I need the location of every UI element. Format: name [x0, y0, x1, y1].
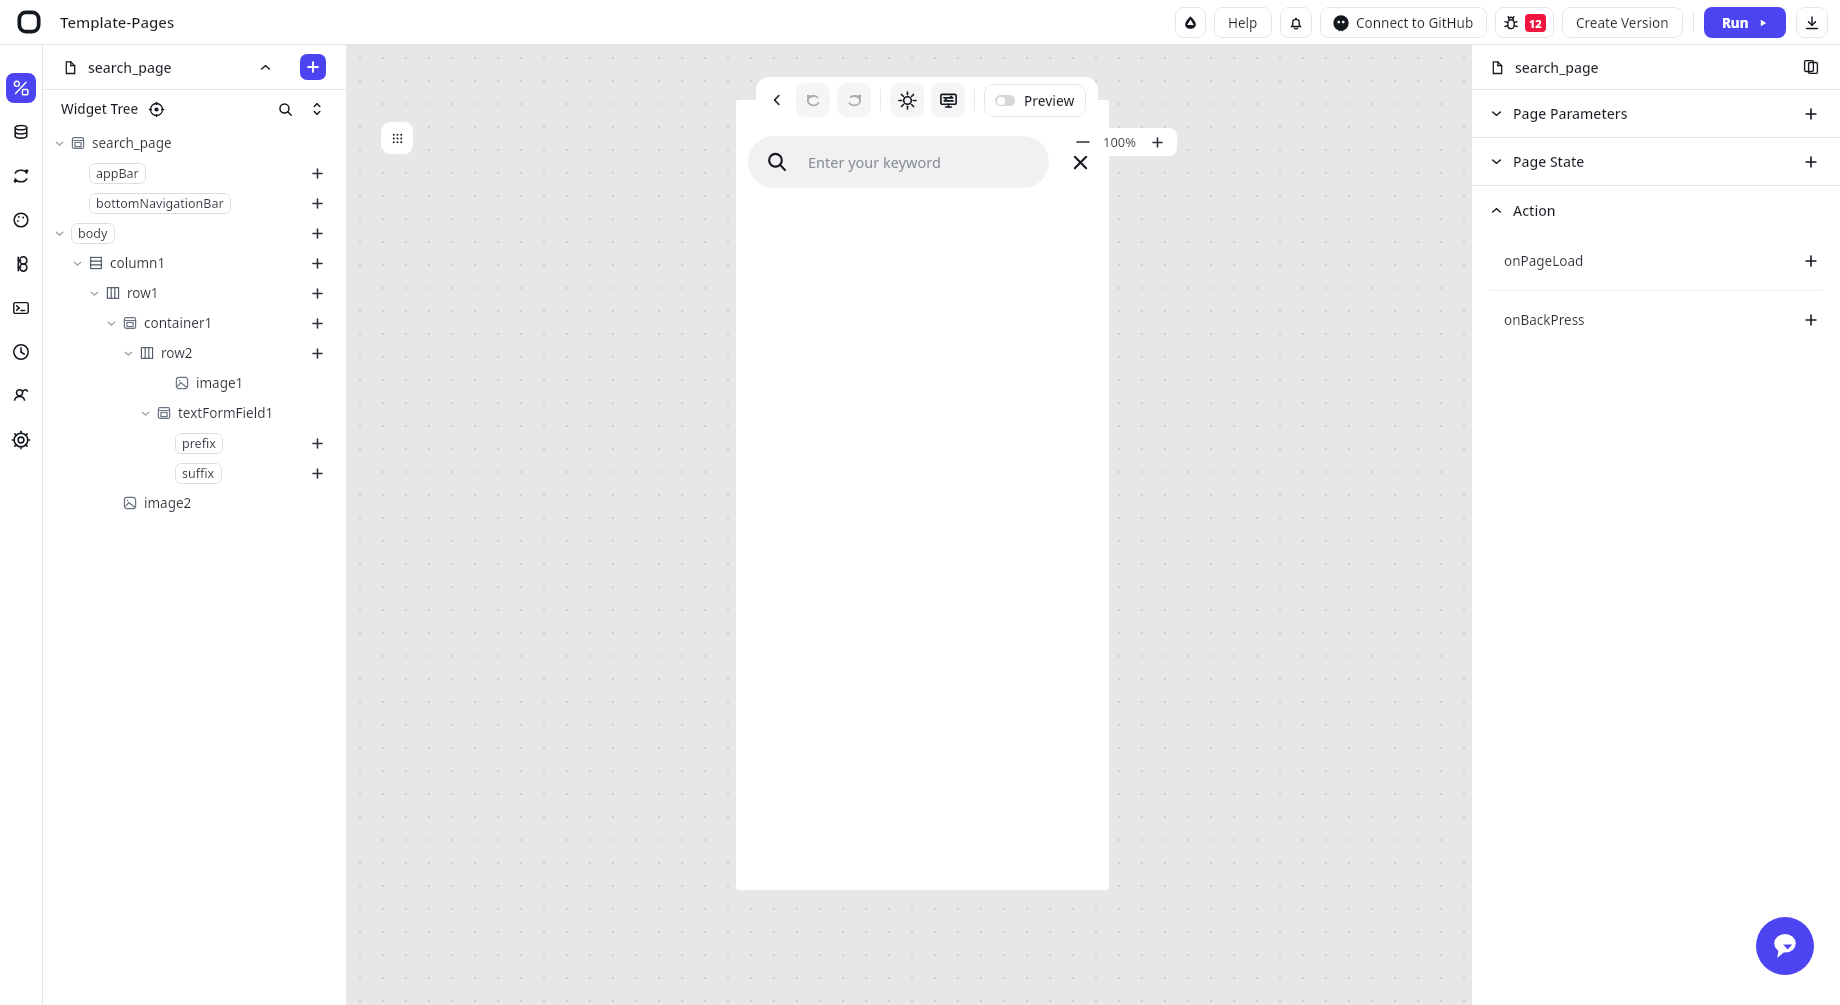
staticText: Run [1722, 14, 1749, 32]
staticText: body [78, 225, 108, 242]
button[interactable]: suffix [43, 458, 346, 488]
staticText: onPageLoad [1504, 252, 1584, 270]
staticText: row2 [161, 344, 193, 362]
button[interactable]: History [6, 337, 36, 367]
staticText: textFormField1 [178, 404, 274, 422]
button[interactable]: Settings [6, 425, 36, 455]
button[interactable]: container1 [43, 308, 346, 338]
button[interactable]: Download [1796, 7, 1828, 38]
staticText: prefix [182, 435, 216, 452]
staticText: column1 [110, 254, 166, 272]
staticText: bottomNavigationBar [96, 195, 224, 212]
button[interactable]: Duplicate [1800, 56, 1822, 78]
button[interactable]: Components [381, 122, 413, 154]
staticText: onBackPress [1504, 311, 1585, 329]
button[interactable]: Zoom out [1073, 132, 1093, 152]
staticText: search_page [88, 58, 172, 77]
staticText: Create Version [1576, 14, 1669, 32]
button[interactable]: Expand [306, 98, 328, 120]
button[interactable]: Chat support [1756, 917, 1814, 975]
staticText: Enter your keyword [808, 152, 941, 172]
button[interactable]: Preview [984, 84, 1086, 117]
button[interactable]: Enter your keyword [748, 136, 1049, 188]
staticText: Preview [1024, 92, 1075, 110]
button[interactable]: Users [6, 381, 36, 411]
button[interactable]: image2 [43, 488, 346, 518]
button[interactable]: search_page [43, 45, 346, 89]
staticText: Help [1228, 14, 1258, 32]
button[interactable]: Theme mode [890, 83, 924, 117]
button[interactable]: body [43, 218, 346, 248]
button[interactable]: appBar [43, 158, 346, 188]
button[interactable]: image1 [43, 368, 346, 398]
staticText: Page State [1513, 152, 1585, 171]
staticText: Page Parameters [1513, 104, 1628, 123]
button[interactable]: Clear [1063, 145, 1097, 179]
staticText: appBar [96, 165, 139, 182]
button[interactable]: Add widget [300, 54, 326, 80]
button[interactable]: Undo [796, 83, 830, 117]
button[interactable]: Design [6, 249, 36, 279]
staticText: search_page [92, 134, 172, 152]
staticText: Connect to GitHub [1356, 14, 1474, 32]
button[interactable]: Theme [1175, 7, 1206, 38]
staticText: search_page [1515, 58, 1599, 77]
staticText: container1 [144, 314, 213, 332]
button[interactable]: Help [1214, 7, 1272, 38]
button[interactable]: Console [6, 293, 36, 323]
button[interactable]: Create Version [1562, 7, 1683, 38]
staticText: image1 [196, 374, 244, 392]
button[interactable]: column1 [43, 248, 346, 278]
button[interactable]: Notifications [1280, 7, 1312, 38]
staticText: Action [1513, 201, 1556, 220]
button[interactable]: Run [1704, 7, 1786, 38]
button[interactable]: Connect to GitHub [1320, 7, 1487, 38]
staticText: 12 [1529, 16, 1542, 31]
button[interactable]: Back [764, 87, 790, 113]
button[interactable]: row1 [43, 278, 346, 308]
button[interactable]: Database [6, 117, 36, 147]
button[interactable]: bottomNavigationBar [43, 188, 346, 218]
staticText: 100% [1103, 133, 1137, 151]
button[interactable]: textFormField1 [43, 398, 346, 428]
button[interactable]: Focus [147, 100, 165, 118]
button[interactable]: Action [1472, 186, 1840, 234]
button[interactable]: Zoom in [1147, 132, 1167, 152]
button[interactable]: Redo [837, 83, 871, 117]
button[interactable]: Device [931, 83, 965, 117]
button[interactable]: search_page [43, 128, 346, 158]
staticText: Widget Tree [61, 100, 139, 118]
button[interactable]: onBackPress [1472, 307, 1840, 333]
button[interactable]: search_page [1472, 45, 1840, 89]
button[interactable]: onPageLoad [1472, 248, 1840, 274]
button[interactable]: Theme [6, 205, 36, 235]
button[interactable]: Flows [6, 161, 36, 191]
button[interactable]: Page State [1472, 138, 1840, 185]
staticText: row1 [127, 284, 159, 302]
button[interactable]: row2 [43, 338, 346, 368]
staticText: suffix [182, 465, 215, 482]
staticText: image2 [144, 494, 192, 512]
button[interactable]: prefix [43, 428, 346, 458]
button[interactable]: Widgets [6, 73, 36, 103]
button[interactable]: Page Parameters [1472, 90, 1840, 137]
button[interactable]: Issues [1495, 7, 1554, 38]
staticText: Template-Pages [60, 12, 175, 32]
button[interactable]: Search [274, 98, 296, 120]
button[interactable]: Logo [12, 5, 46, 39]
